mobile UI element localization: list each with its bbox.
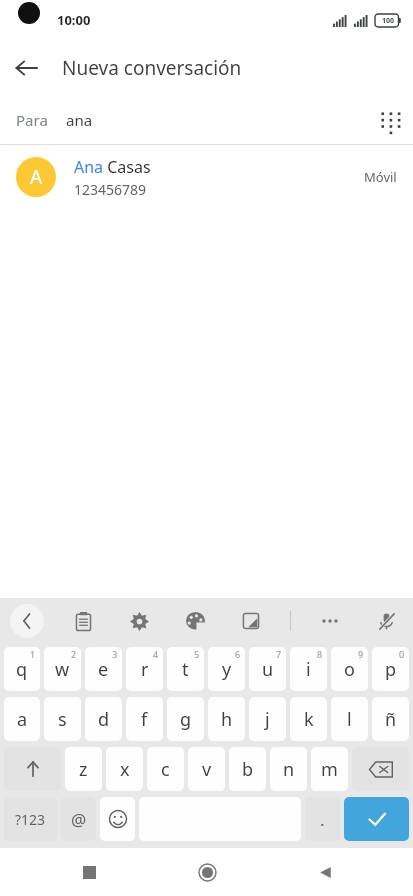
staticText: Para bbox=[16, 110, 48, 130]
button[interactable]: Resize bbox=[234, 604, 268, 638]
staticText: b bbox=[242, 757, 254, 782]
staticText: r bbox=[141, 657, 149, 682]
staticText: 100 bbox=[382, 16, 395, 26]
staticText: 10:00 bbox=[57, 11, 91, 29]
staticText: u bbox=[262, 657, 274, 682]
staticText: 123456789 bbox=[74, 180, 147, 199]
button[interactable]: p bbox=[372, 647, 409, 691]
button[interactable]: . bbox=[305, 797, 340, 841]
button[interactable]: Expand bbox=[10, 604, 44, 638]
staticText: j bbox=[265, 707, 270, 732]
button[interactable]: w bbox=[44, 647, 81, 691]
staticText: @ bbox=[71, 808, 87, 831]
button[interactable]: q bbox=[4, 647, 40, 691]
staticText: t bbox=[182, 657, 189, 682]
staticText: y bbox=[222, 657, 232, 682]
button[interactable]: l bbox=[331, 697, 368, 741]
staticText: i bbox=[306, 657, 311, 682]
button[interactable]: c bbox=[147, 747, 184, 791]
button[interactable]: Backspace bbox=[352, 747, 409, 791]
staticText: 3 bbox=[112, 648, 118, 660]
button[interactable]: ?123 bbox=[4, 797, 57, 841]
staticText: c bbox=[161, 757, 170, 782]
staticText: 4 bbox=[153, 648, 159, 660]
button[interactable]: A bbox=[0, 145, 413, 209]
button[interactable]: h bbox=[208, 697, 245, 741]
staticText: Ana Casas bbox=[74, 156, 151, 178]
button[interactable]: e bbox=[85, 647, 122, 691]
button[interactable]: a bbox=[4, 697, 40, 741]
staticText: n bbox=[283, 757, 295, 782]
button[interactable]: Recents bbox=[65, 848, 113, 896]
button[interactable]: Done bbox=[344, 797, 409, 841]
staticText: 0 bbox=[399, 648, 405, 660]
button[interactable]: x bbox=[106, 747, 143, 791]
staticText: ñ bbox=[385, 707, 397, 732]
staticText: A bbox=[30, 164, 43, 190]
staticText: . bbox=[320, 808, 325, 831]
staticText: 6 bbox=[235, 648, 241, 660]
button[interactable]: Dialpad bbox=[365, 96, 413, 144]
staticText: f bbox=[141, 707, 148, 732]
button[interactable]: Back bbox=[301, 848, 349, 896]
button[interactable]: Theme bbox=[178, 604, 212, 638]
staticText: 5 bbox=[194, 648, 200, 660]
button[interactable]: j bbox=[249, 697, 286, 741]
staticText: Nueva conversación bbox=[62, 55, 242, 81]
staticText: p bbox=[385, 657, 397, 682]
button[interactable]: k bbox=[290, 697, 327, 741]
staticText: x bbox=[120, 757, 130, 782]
staticText: ?123 bbox=[15, 810, 46, 829]
button[interactable]: o bbox=[331, 647, 368, 691]
button[interactable]: u bbox=[249, 647, 286, 691]
button[interactable]: t bbox=[167, 647, 204, 691]
button[interactable]: z bbox=[65, 747, 102, 791]
button[interactable]: ñ bbox=[372, 697, 409, 741]
staticText: k bbox=[304, 707, 314, 732]
button[interactable]: Mic off bbox=[369, 604, 403, 638]
button[interactable]: Back bbox=[0, 42, 52, 94]
staticText: m bbox=[321, 757, 338, 782]
staticText: d bbox=[98, 707, 110, 732]
staticText: 2 bbox=[71, 648, 77, 660]
staticText: e bbox=[98, 657, 109, 682]
staticText: o bbox=[344, 657, 355, 682]
button[interactable]: i bbox=[290, 647, 327, 691]
button[interactable]: Emoji bbox=[100, 797, 135, 841]
staticText: z bbox=[79, 757, 88, 782]
button[interactable]: n bbox=[270, 747, 307, 791]
staticText: q bbox=[16, 657, 28, 682]
button[interactable]: v bbox=[188, 747, 225, 791]
staticText: 8 bbox=[317, 648, 323, 660]
staticText: l bbox=[347, 707, 352, 732]
button[interactable]: r bbox=[126, 647, 163, 691]
button[interactable]: y bbox=[208, 647, 245, 691]
staticText: a bbox=[17, 707, 28, 732]
staticText: g bbox=[180, 707, 192, 732]
staticText: v bbox=[202, 757, 212, 782]
button[interactable]: d bbox=[85, 697, 122, 741]
button[interactable]: g bbox=[167, 697, 204, 741]
staticText: s bbox=[58, 707, 67, 732]
staticText: ana bbox=[66, 110, 93, 130]
staticText: 9 bbox=[358, 648, 364, 660]
button[interactable]: More bbox=[313, 604, 347, 638]
button[interactable]: b bbox=[229, 747, 266, 791]
staticText: w bbox=[55, 657, 70, 682]
button[interactable]: f bbox=[126, 697, 163, 741]
button[interactable]: m bbox=[311, 747, 348, 791]
button[interactable]: Shift bbox=[4, 747, 61, 791]
staticText: Móvil bbox=[364, 168, 397, 186]
staticText: h bbox=[221, 707, 233, 732]
button[interactable]: Home bbox=[183, 848, 231, 896]
button[interactable]: @ bbox=[61, 797, 96, 841]
button[interactable]: Settings bbox=[122, 604, 156, 638]
staticText: 1 bbox=[30, 648, 36, 660]
button[interactable]: s bbox=[44, 697, 81, 741]
staticText: 7 bbox=[276, 648, 282, 660]
button[interactable]: Clipboard bbox=[66, 604, 100, 638]
